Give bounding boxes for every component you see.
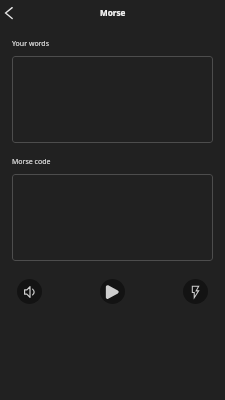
staticText: Your words [12,39,50,49]
button[interactable]: Sound [17,279,42,304]
button[interactable]: Play [100,279,125,304]
button[interactable] [12,56,213,143]
button[interactable]: Back [0,0,24,24]
button[interactable] [12,174,213,261]
button[interactable]: Flashlight [183,279,208,304]
staticText: Morse code [12,157,51,167]
staticText: Morse [100,7,126,18]
